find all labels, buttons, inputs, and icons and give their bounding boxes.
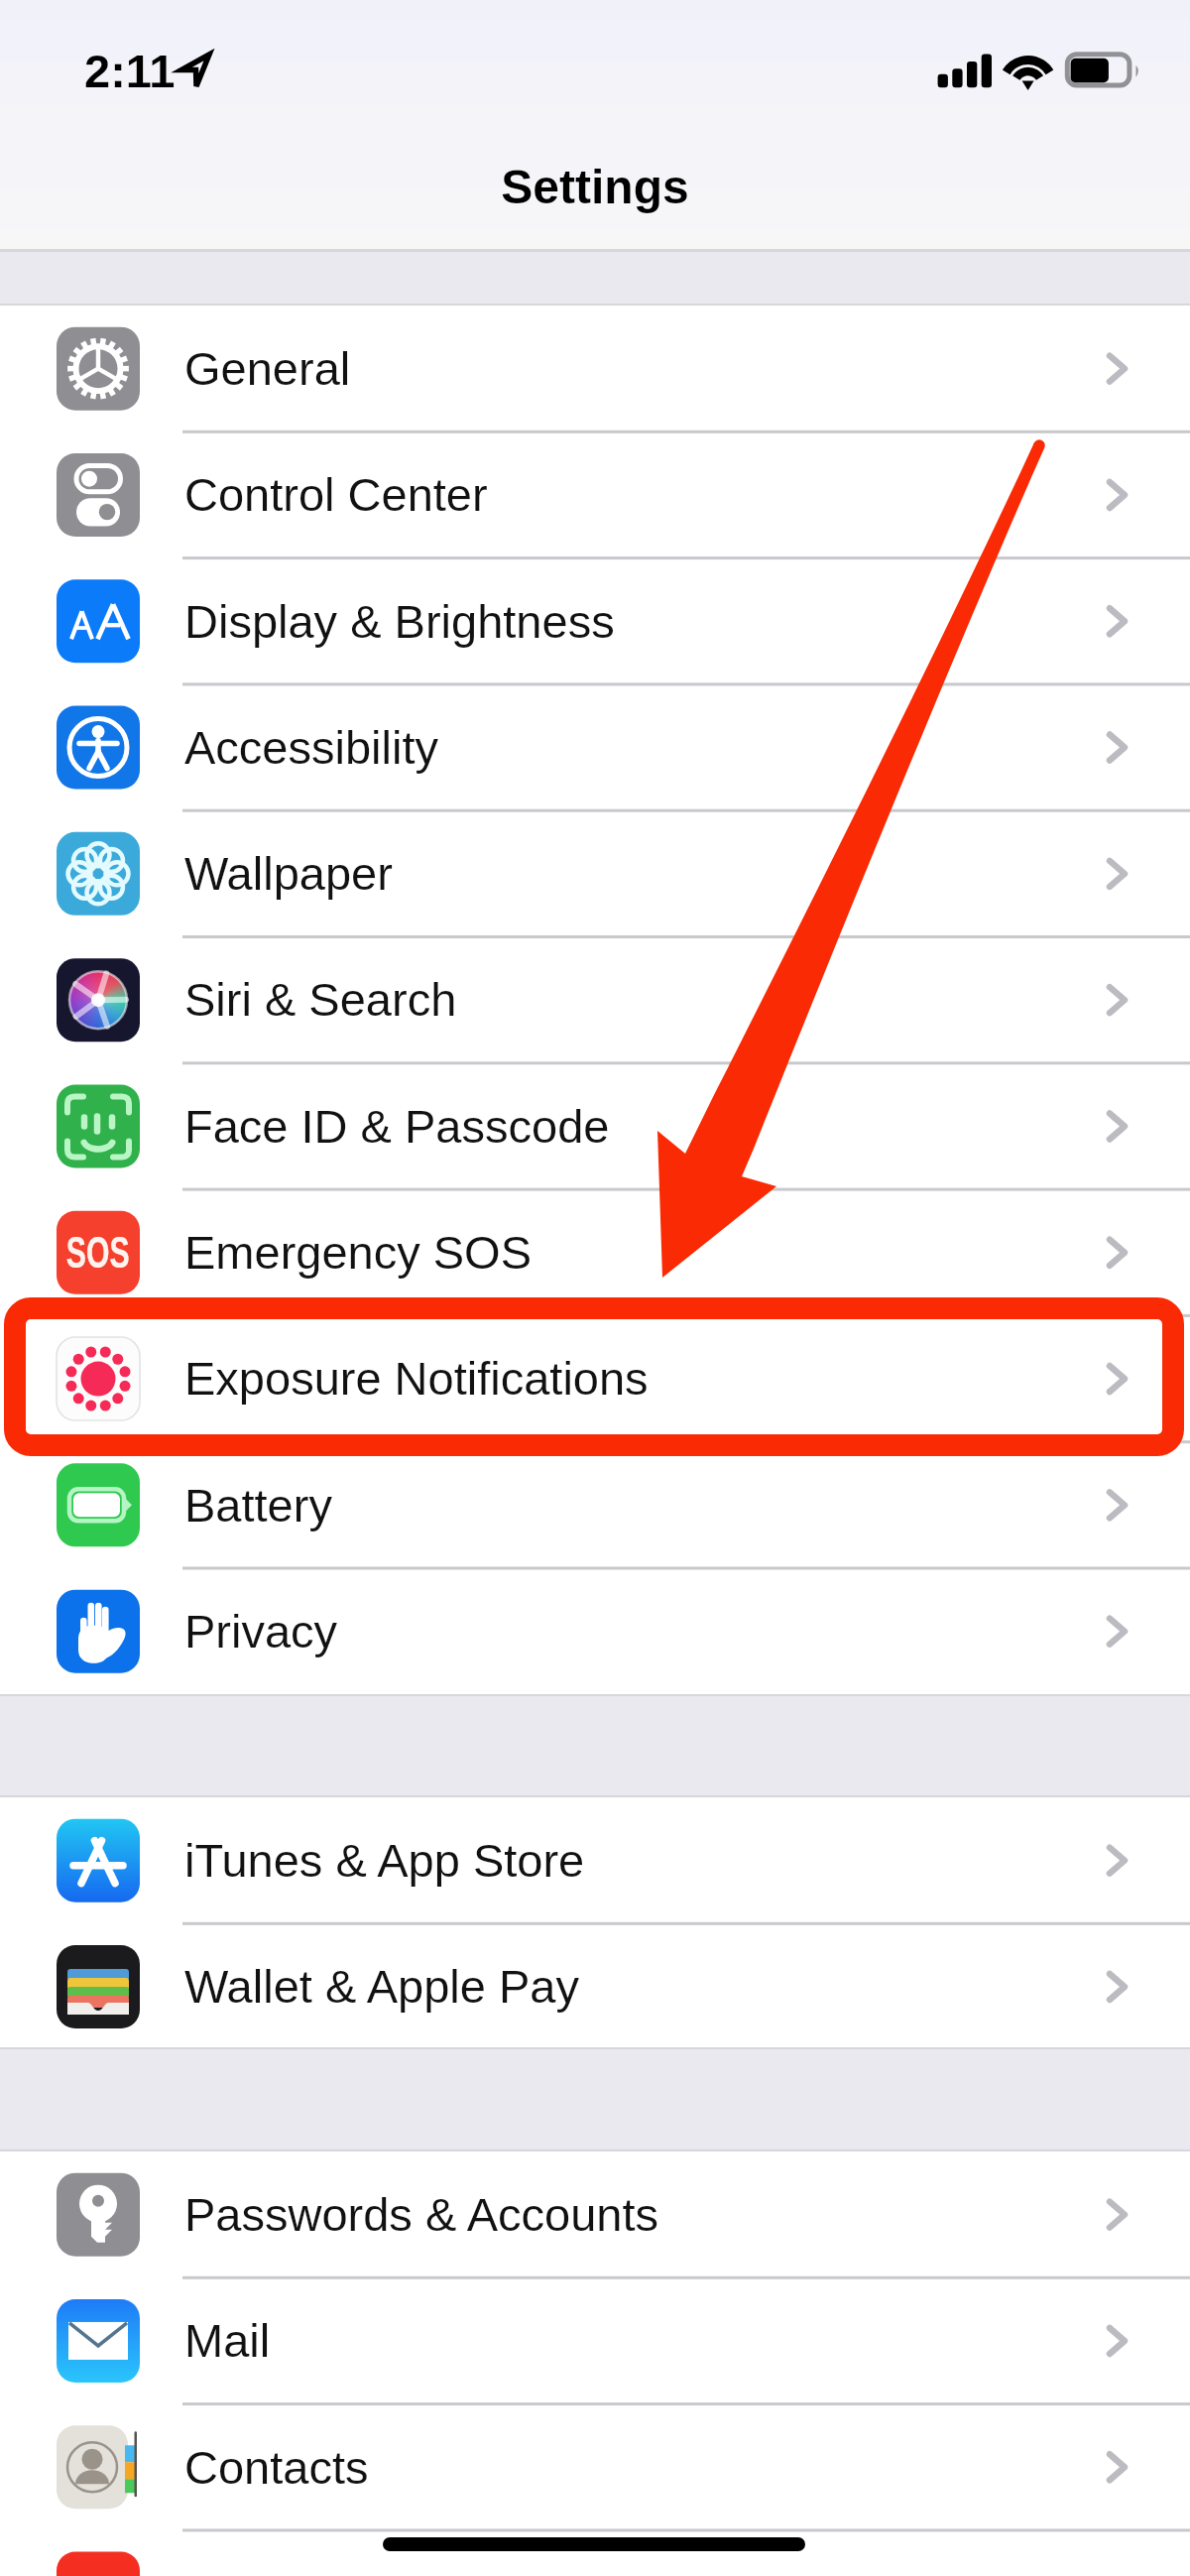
button[interactable]: Siri & Search <box>0 936 1190 1062</box>
staticText: General <box>184 342 351 395</box>
button[interactable]: Wallet & Apple Pay <box>0 1923 1190 2049</box>
button[interactable]: Battery <box>0 1442 1190 1568</box>
button[interactable]: Mail <box>0 2277 1190 2403</box>
button[interactable]: Control Center <box>0 431 1190 557</box>
button[interactable]: Exposure Notifications <box>0 1315 1190 1441</box>
staticText: iTunes & App Store <box>184 1834 585 1887</box>
button[interactable]: Passwords & Accounts <box>0 2151 1190 2277</box>
button[interactable]: General <box>0 306 1190 431</box>
button[interactable]: Privacy <box>0 1568 1190 1694</box>
button[interactable]: Accessibility <box>0 684 1190 810</box>
staticText: Mail <box>184 2314 271 2367</box>
staticText: Passwords & Accounts <box>184 2188 659 2241</box>
staticText: 2:11 <box>84 45 176 97</box>
staticText: Privacy <box>184 1605 338 1657</box>
staticText: Face ID & Passcode <box>184 1100 610 1153</box>
staticText: Control Center <box>184 468 488 521</box>
button[interactable]: Display & Brightness <box>0 558 1190 684</box>
button[interactable]: Emergency SOS <box>0 1189 1190 1315</box>
staticText: SOS <box>66 1228 130 1276</box>
button[interactable]: Wallpaper <box>0 810 1190 936</box>
staticText: Settings <box>0 161 1190 214</box>
staticText: Siri & Search <box>184 973 457 1026</box>
staticText: Wallet & Apple Pay <box>184 1960 579 2013</box>
staticText: Battery <box>184 1479 332 1532</box>
staticText: Accessibility <box>184 721 438 774</box>
button[interactable]: iTunes & App Store <box>0 1797 1190 1923</box>
staticText: Wallpaper <box>184 847 393 900</box>
staticText: Display & Brightness <box>184 595 615 648</box>
button[interactable]: Contacts <box>0 2404 1190 2530</box>
button[interactable]: Face ID & Passcode <box>0 1063 1190 1189</box>
staticText: Contacts <box>184 2441 369 2494</box>
staticText: Exposure Notifications <box>184 1352 649 1405</box>
staticText: Emergency SOS <box>184 1226 533 1279</box>
